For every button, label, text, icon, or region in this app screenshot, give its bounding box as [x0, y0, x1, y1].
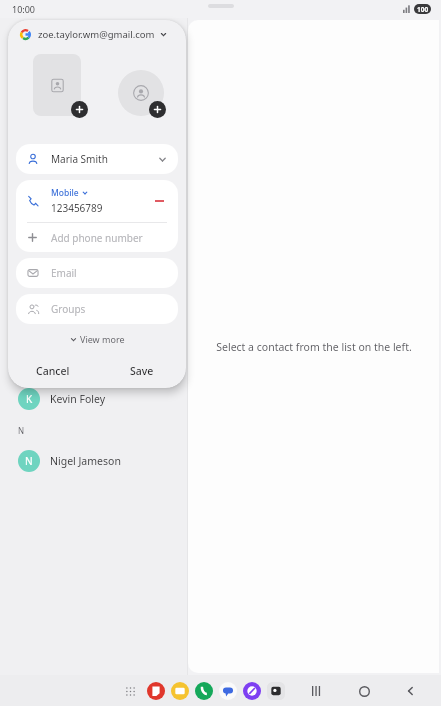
staticText: 10:00 — [12, 3, 36, 15]
button[interactable]: Messages — [219, 682, 237, 700]
button[interactable]: Maria Smith — [16, 144, 178, 174]
button[interactable]: Save — [97, 357, 186, 385]
staticText: 100 — [417, 5, 429, 14]
button[interactable]: Add phone number — [16, 223, 178, 252]
staticText: Nigel Jameson — [50, 454, 121, 468]
button[interactable]: Add photo — [71, 101, 88, 118]
button[interactable]: N — [0, 442, 187, 480]
button[interactable]: zoe.taylor.wm@gmail.com — [8, 20, 186, 48]
button[interactable]: Groups — [16, 294, 178, 324]
staticText: View more — [80, 333, 125, 345]
button[interactable]: Add avatar — [149, 101, 166, 118]
staticText: Select a contact from the list on the le… — [216, 340, 412, 354]
staticText: zoe.taylor.wm@gmail.com — [38, 28, 155, 41]
staticText: N — [18, 425, 25, 436]
staticText: Add phone number — [51, 231, 143, 245]
button[interactable]: Apps — [121, 682, 139, 700]
button[interactable]: Add avatar — [118, 70, 164, 116]
button[interactable]: Back — [400, 680, 422, 702]
button[interactable]: K — [0, 380, 187, 418]
staticText: N — [25, 454, 33, 468]
button[interactable]: Home — [353, 680, 375, 702]
staticText: Cancel — [36, 364, 70, 378]
staticText: 123456789 — [51, 201, 103, 215]
button[interactable]: Add photo — [33, 54, 81, 116]
button[interactable]: Phone — [195, 682, 213, 700]
button[interactable]: Internet — [243, 682, 261, 700]
button[interactable]: Recents — [306, 680, 328, 702]
button[interactable]: Files — [171, 682, 189, 700]
button[interactable]: Remove phone number — [151, 193, 167, 209]
staticText: K — [26, 392, 33, 406]
button[interactable]: View more — [8, 324, 186, 338]
button[interactable]: Email — [16, 258, 178, 288]
button[interactable]: Keep — [147, 682, 165, 700]
staticText: Save — [130, 364, 154, 378]
staticText: Maria Smith — [51, 152, 158, 166]
staticText: Mobile — [51, 187, 79, 199]
staticText: Kevin Foley — [50, 392, 106, 406]
button[interactable]: Mobile — [16, 180, 178, 222]
staticText: Groups — [51, 302, 86, 316]
button[interactable]: Cancel — [8, 357, 97, 385]
staticText: Email — [51, 266, 77, 280]
button[interactable]: Camera — [267, 682, 285, 700]
